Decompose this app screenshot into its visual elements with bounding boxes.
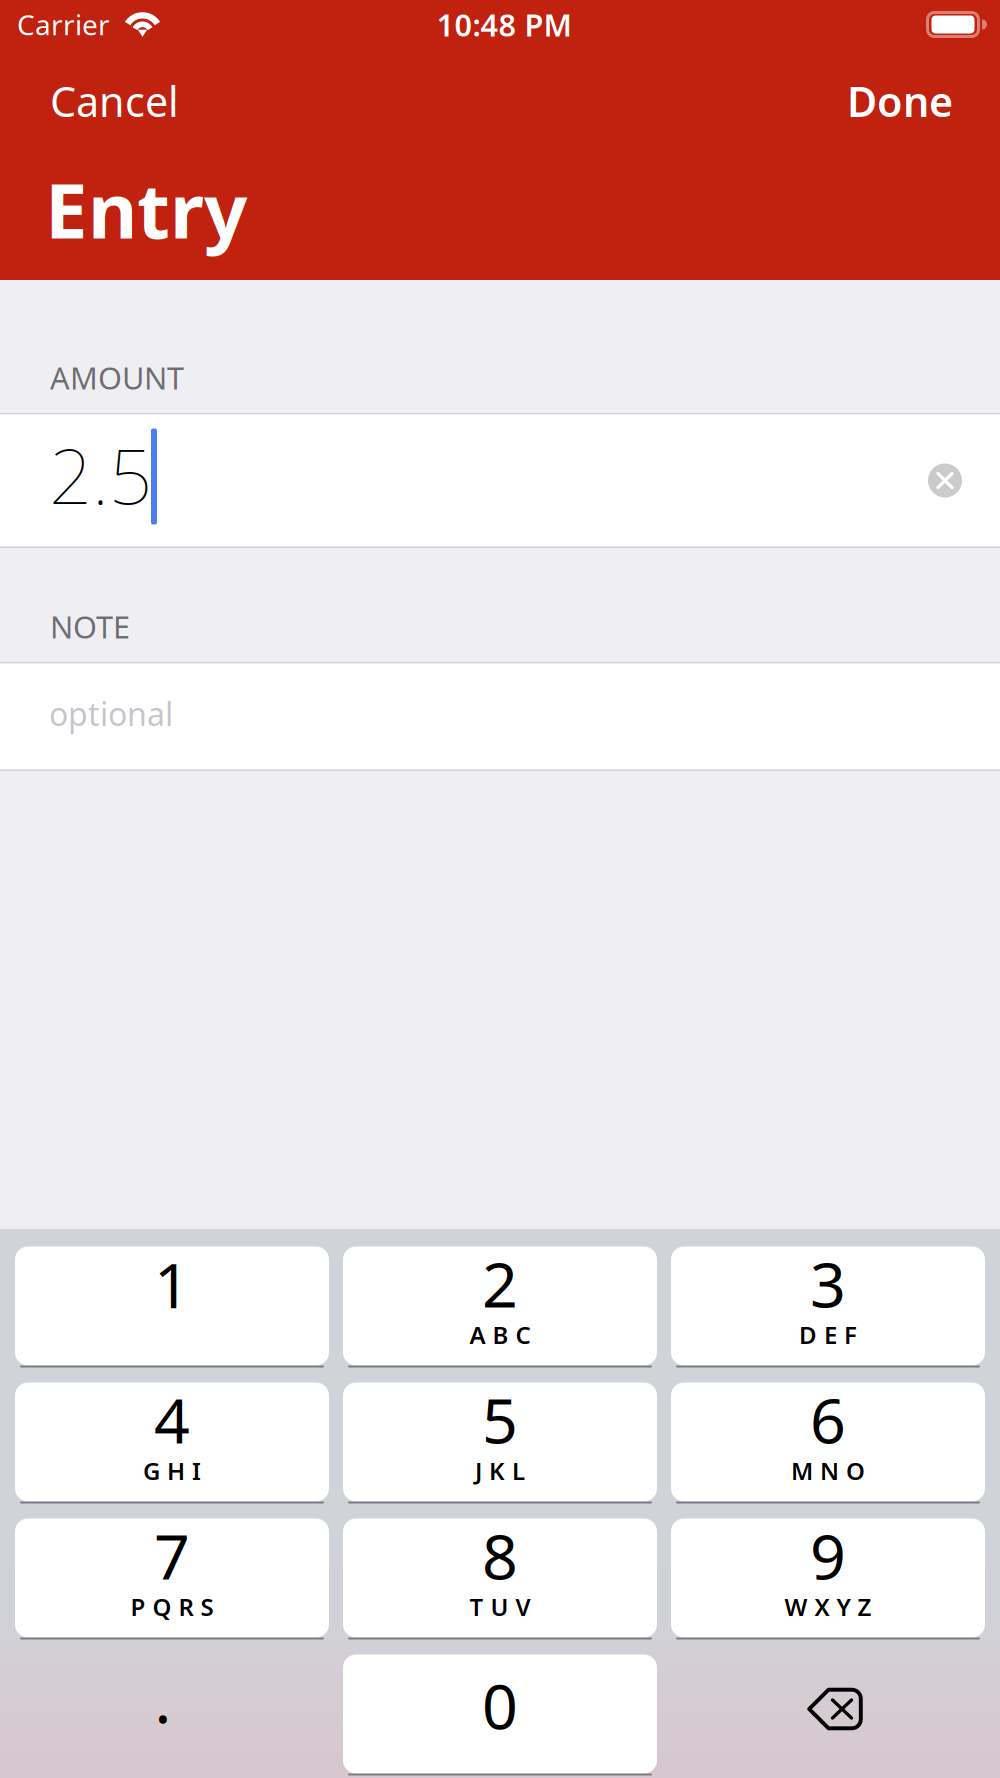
staticText: MNO [791,1455,865,1487]
button[interactable]: 9 [671,1518,985,1639]
button[interactable]: 3 [671,1246,985,1367]
staticText: Carrier [17,6,110,43]
button[interactable]: Clear text [907,442,983,518]
button[interactable]: 2 [343,1246,657,1367]
button[interactable]: 1 [15,1246,329,1367]
staticText: 9 [810,1513,846,1597]
button[interactable]: 7 [15,1518,329,1639]
staticText: WXYZ [784,1591,871,1623]
staticText: 0 [482,1663,518,1747]
staticText: 8 [482,1513,518,1597]
button[interactable]: 0 [343,1654,657,1775]
button[interactable]: 5 [343,1382,657,1503]
button[interactable]: 4 [15,1382,329,1503]
staticText: 10:48 PM [436,4,571,45]
staticText: . [154,1657,171,1741]
button[interactable]: Done [821,62,1000,140]
staticText: 5 [482,1377,518,1461]
button[interactable]: 8 [343,1518,657,1639]
staticText: DEF [799,1319,857,1351]
staticText: NOTE [50,606,130,647]
staticText: 4 [154,1377,190,1461]
button[interactable]: 6 [671,1382,985,1503]
staticText: 2 [482,1241,518,1325]
staticText: ABC [469,1319,530,1351]
button[interactable]: Cancel [0,62,205,140]
staticText: GHI [143,1455,201,1487]
staticText: Cancel [50,74,179,128]
staticText: AMOUNT [50,357,184,398]
staticText: PQRS [130,1591,213,1623]
staticText: 3 [810,1241,846,1325]
button[interactable]: Delete [671,1654,985,1775]
button[interactable]: Decimal point [15,1654,329,1775]
staticText: Done [847,74,953,128]
staticText: 6 [810,1377,846,1461]
staticText: optional [49,692,173,735]
staticText: JKL [475,1455,525,1487]
staticText: 2.5 [49,424,152,525]
staticText: 1 [154,1242,190,1326]
staticText: 7 [154,1513,190,1597]
staticText: TUV [469,1591,530,1623]
staticText: Entry [45,158,247,259]
